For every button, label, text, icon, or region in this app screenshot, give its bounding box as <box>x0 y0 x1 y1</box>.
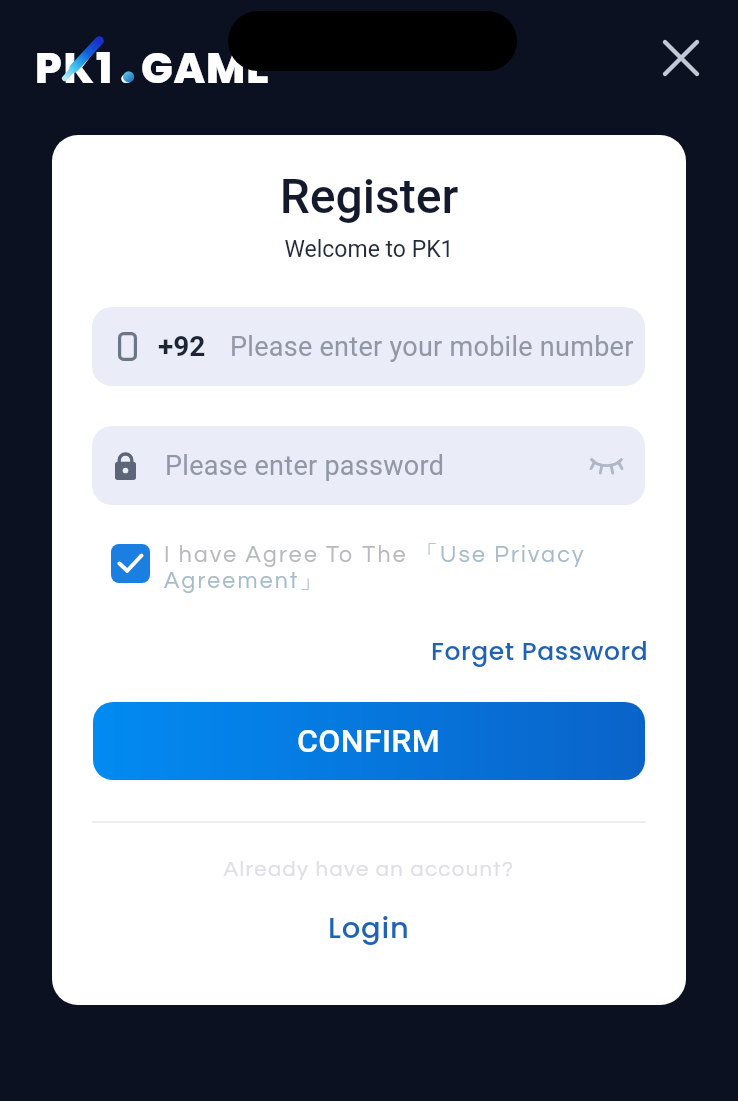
staticText: Forget Password <box>431 634 649 669</box>
staticText: I have Agree To The 「Use Privacy Agreeme… <box>164 540 609 595</box>
staticText: Welcome to PK1 <box>52 236 686 263</box>
button[interactable]: Agree to privacy agreement <box>111 544 150 583</box>
staticText: Please enter your mobile number <box>230 331 634 363</box>
staticText: CONFIRM <box>297 722 441 760</box>
staticText: Please enter password <box>165 450 583 482</box>
staticText: Login <box>328 908 410 949</box>
button[interactable]: Login <box>312 902 426 955</box>
staticText: Already have an account? <box>52 858 686 881</box>
button[interactable]: CONFIRM <box>93 702 645 780</box>
staticText: . <box>120 39 135 98</box>
button[interactable]: Close <box>649 26 713 90</box>
staticText: Register <box>52 168 686 224</box>
staticText: PK1 <box>35 39 115 98</box>
staticText: +92 <box>158 330 206 363</box>
staticText: GAME <box>141 39 270 98</box>
button[interactable]: +92 <box>92 307 645 386</box>
button[interactable]: Please enter password <box>92 426 645 505</box>
button[interactable]: PK1.GAME <box>28 34 268 94</box>
button[interactable]: Forget Password <box>423 628 657 675</box>
button[interactable]: Show password <box>583 443 629 489</box>
